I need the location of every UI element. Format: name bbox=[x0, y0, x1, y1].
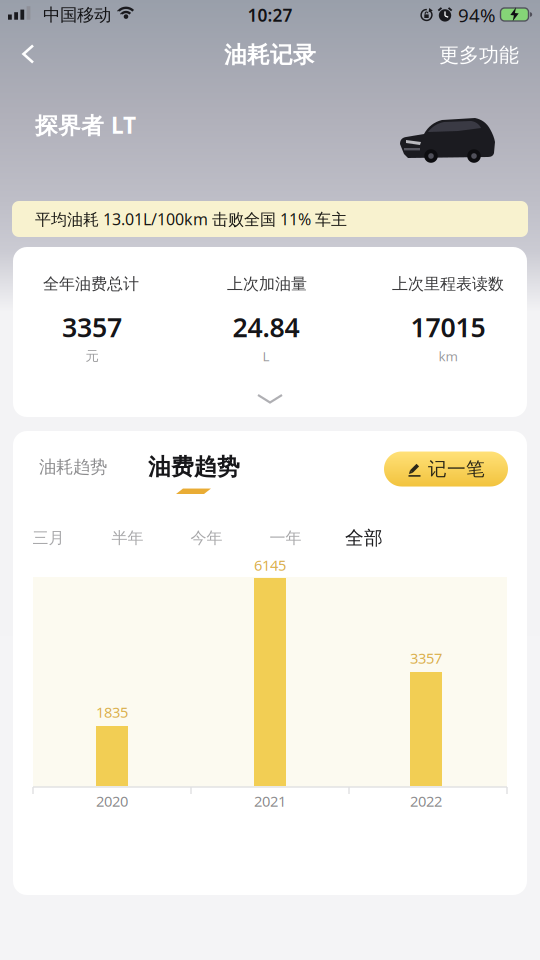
staticText: 半年 bbox=[111, 528, 143, 548]
staticText: 油费趋势 bbox=[148, 453, 240, 481]
staticText: 一年 bbox=[269, 528, 301, 548]
button[interactable]: 半年 bbox=[111, 528, 143, 548]
staticText: 3357 bbox=[62, 309, 122, 345]
staticText: 24.84 bbox=[232, 309, 299, 345]
staticText: 1835 bbox=[96, 702, 128, 722]
staticText: L bbox=[262, 347, 269, 365]
staticText: 三月 bbox=[32, 528, 64, 548]
button[interactable]: 全部 bbox=[345, 526, 383, 549]
staticText: 元 bbox=[85, 348, 98, 364]
staticText: 3357 bbox=[410, 648, 442, 668]
staticText: 上次加油量 bbox=[227, 274, 307, 294]
staticText: km bbox=[438, 347, 457, 365]
staticText: 全部 bbox=[345, 526, 383, 549]
button[interactable]: 一年 bbox=[269, 528, 301, 548]
staticText: 探界者 LT bbox=[35, 110, 136, 140]
staticText: 10:27 bbox=[247, 3, 292, 26]
staticText: 2021 bbox=[254, 791, 286, 811]
staticText: 油耗记录 bbox=[224, 41, 316, 69]
button[interactable]: 展开 bbox=[256, 393, 284, 405]
staticText: 2022 bbox=[410, 791, 442, 811]
staticText: 今年 bbox=[190, 528, 222, 548]
staticText: 6145 bbox=[254, 555, 286, 575]
staticText: 全年油费总计 bbox=[43, 274, 139, 294]
staticText: 94% bbox=[458, 3, 496, 27]
button[interactable]: 油费趋势 bbox=[148, 453, 240, 481]
staticText: 平均油耗 13.01L/100km 击败全国 11% 车主 bbox=[35, 208, 347, 230]
button[interactable]: 三月 bbox=[32, 528, 64, 548]
staticText: 记一笔 bbox=[428, 457, 485, 480]
staticText: 更多功能 bbox=[439, 43, 519, 67]
staticText: 17015 bbox=[410, 309, 485, 345]
button[interactable]: 记一笔 bbox=[384, 451, 508, 486]
staticText: 中国移动 bbox=[43, 4, 111, 26]
staticText: 上次里程表读数 bbox=[392, 274, 504, 294]
button[interactable]: Back bbox=[20, 44, 36, 64]
button[interactable]: 更多功能 bbox=[439, 43, 519, 67]
button[interactable]: 油耗趋势 bbox=[39, 456, 107, 478]
button[interactable]: 今年 bbox=[190, 528, 222, 548]
staticText: 油耗趋势 bbox=[39, 456, 107, 478]
staticText: 2020 bbox=[96, 791, 128, 811]
